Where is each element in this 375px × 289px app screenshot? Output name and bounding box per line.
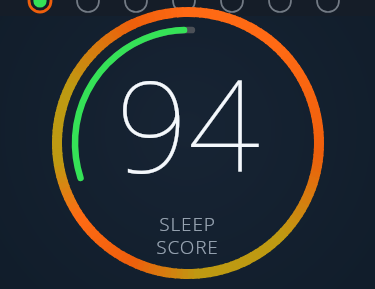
button[interactable]: Sleep score 94, open details [0, 0, 375, 289]
staticText: SLEEP SCORE [156, 211, 219, 260]
staticText: 94 [116, 37, 260, 209]
